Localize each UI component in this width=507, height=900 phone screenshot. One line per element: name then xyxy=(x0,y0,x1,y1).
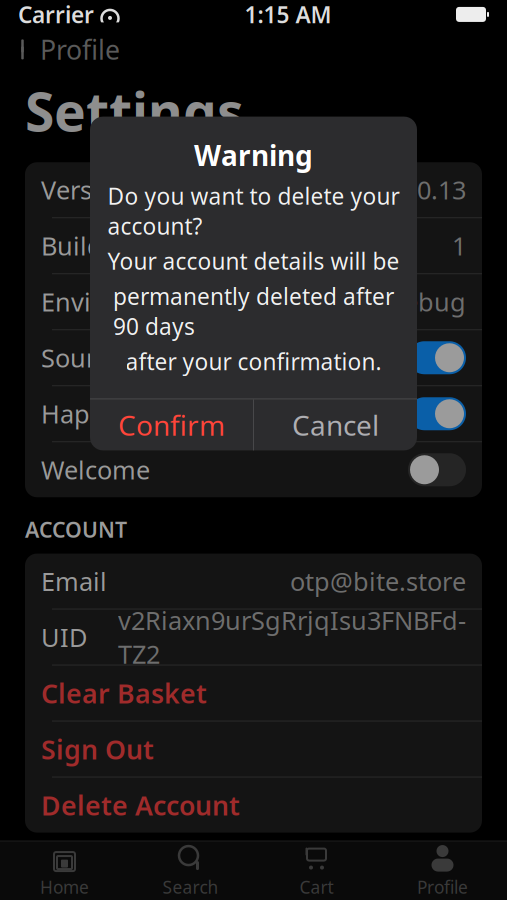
button[interactable]: Cancel xyxy=(254,399,417,450)
button[interactable]: Home xyxy=(1,842,127,900)
button[interactable]: Clear Basket xyxy=(25,666,482,721)
staticText: Build xyxy=(41,229,103,262)
staticText: Haptic xyxy=(41,397,118,430)
staticText: UID xyxy=(41,620,87,654)
staticText: after your confirmation. xyxy=(125,346,381,376)
staticText: v2Riaxn9urSgRrjqIsu3FNBFdTZ2 xyxy=(118,603,466,671)
button[interactable]: Haptic xyxy=(25,386,482,441)
staticText: Carrier xyxy=(18,0,94,29)
staticText: Clear Basket xyxy=(41,675,207,711)
staticText: Environment xyxy=(41,285,195,318)
staticText: Welcome xyxy=(41,453,150,486)
staticText: 1.0.13 xyxy=(396,173,466,206)
staticText: Delete Account xyxy=(41,787,240,823)
staticText: Your account details will be xyxy=(107,246,399,276)
button[interactable]: Sign Out xyxy=(25,722,482,777)
staticText: 1 xyxy=(452,229,466,262)
staticText: Do you want to delete your account? xyxy=(107,181,399,241)
staticText: Home xyxy=(40,876,89,899)
staticText: Profile xyxy=(417,876,468,899)
button[interactable]: Profile xyxy=(379,842,505,900)
button[interactable]: Confirm xyxy=(90,399,253,450)
staticText: Cancel xyxy=(292,406,379,443)
button[interactable]: Delete Account xyxy=(25,778,482,833)
button[interactable]: Sound xyxy=(25,330,482,385)
staticText: 1:15 AM xyxy=(244,0,331,29)
button[interactable]: Welcome xyxy=(25,442,482,497)
button[interactable]: Cart xyxy=(253,842,379,900)
staticText: Settings xyxy=(25,75,244,146)
staticText: Version xyxy=(41,173,130,206)
staticText: Cart xyxy=(299,876,333,899)
staticText: Warning xyxy=(194,137,313,174)
staticText: ACCOUNT xyxy=(25,515,127,543)
staticText: Debug xyxy=(386,285,466,318)
staticText: Search xyxy=(162,876,218,899)
staticText: permanently deleted after 90 days xyxy=(113,281,394,341)
staticText: Sound xyxy=(41,341,118,374)
button[interactable]: Profile xyxy=(0,29,138,69)
staticText: otp@bite.store xyxy=(290,564,466,598)
staticText: Profile xyxy=(40,32,120,67)
staticText: Confirm xyxy=(118,406,225,443)
staticText: Sign Out xyxy=(41,731,154,767)
staticText: Email xyxy=(41,564,107,598)
button[interactable]: Search xyxy=(127,842,253,900)
